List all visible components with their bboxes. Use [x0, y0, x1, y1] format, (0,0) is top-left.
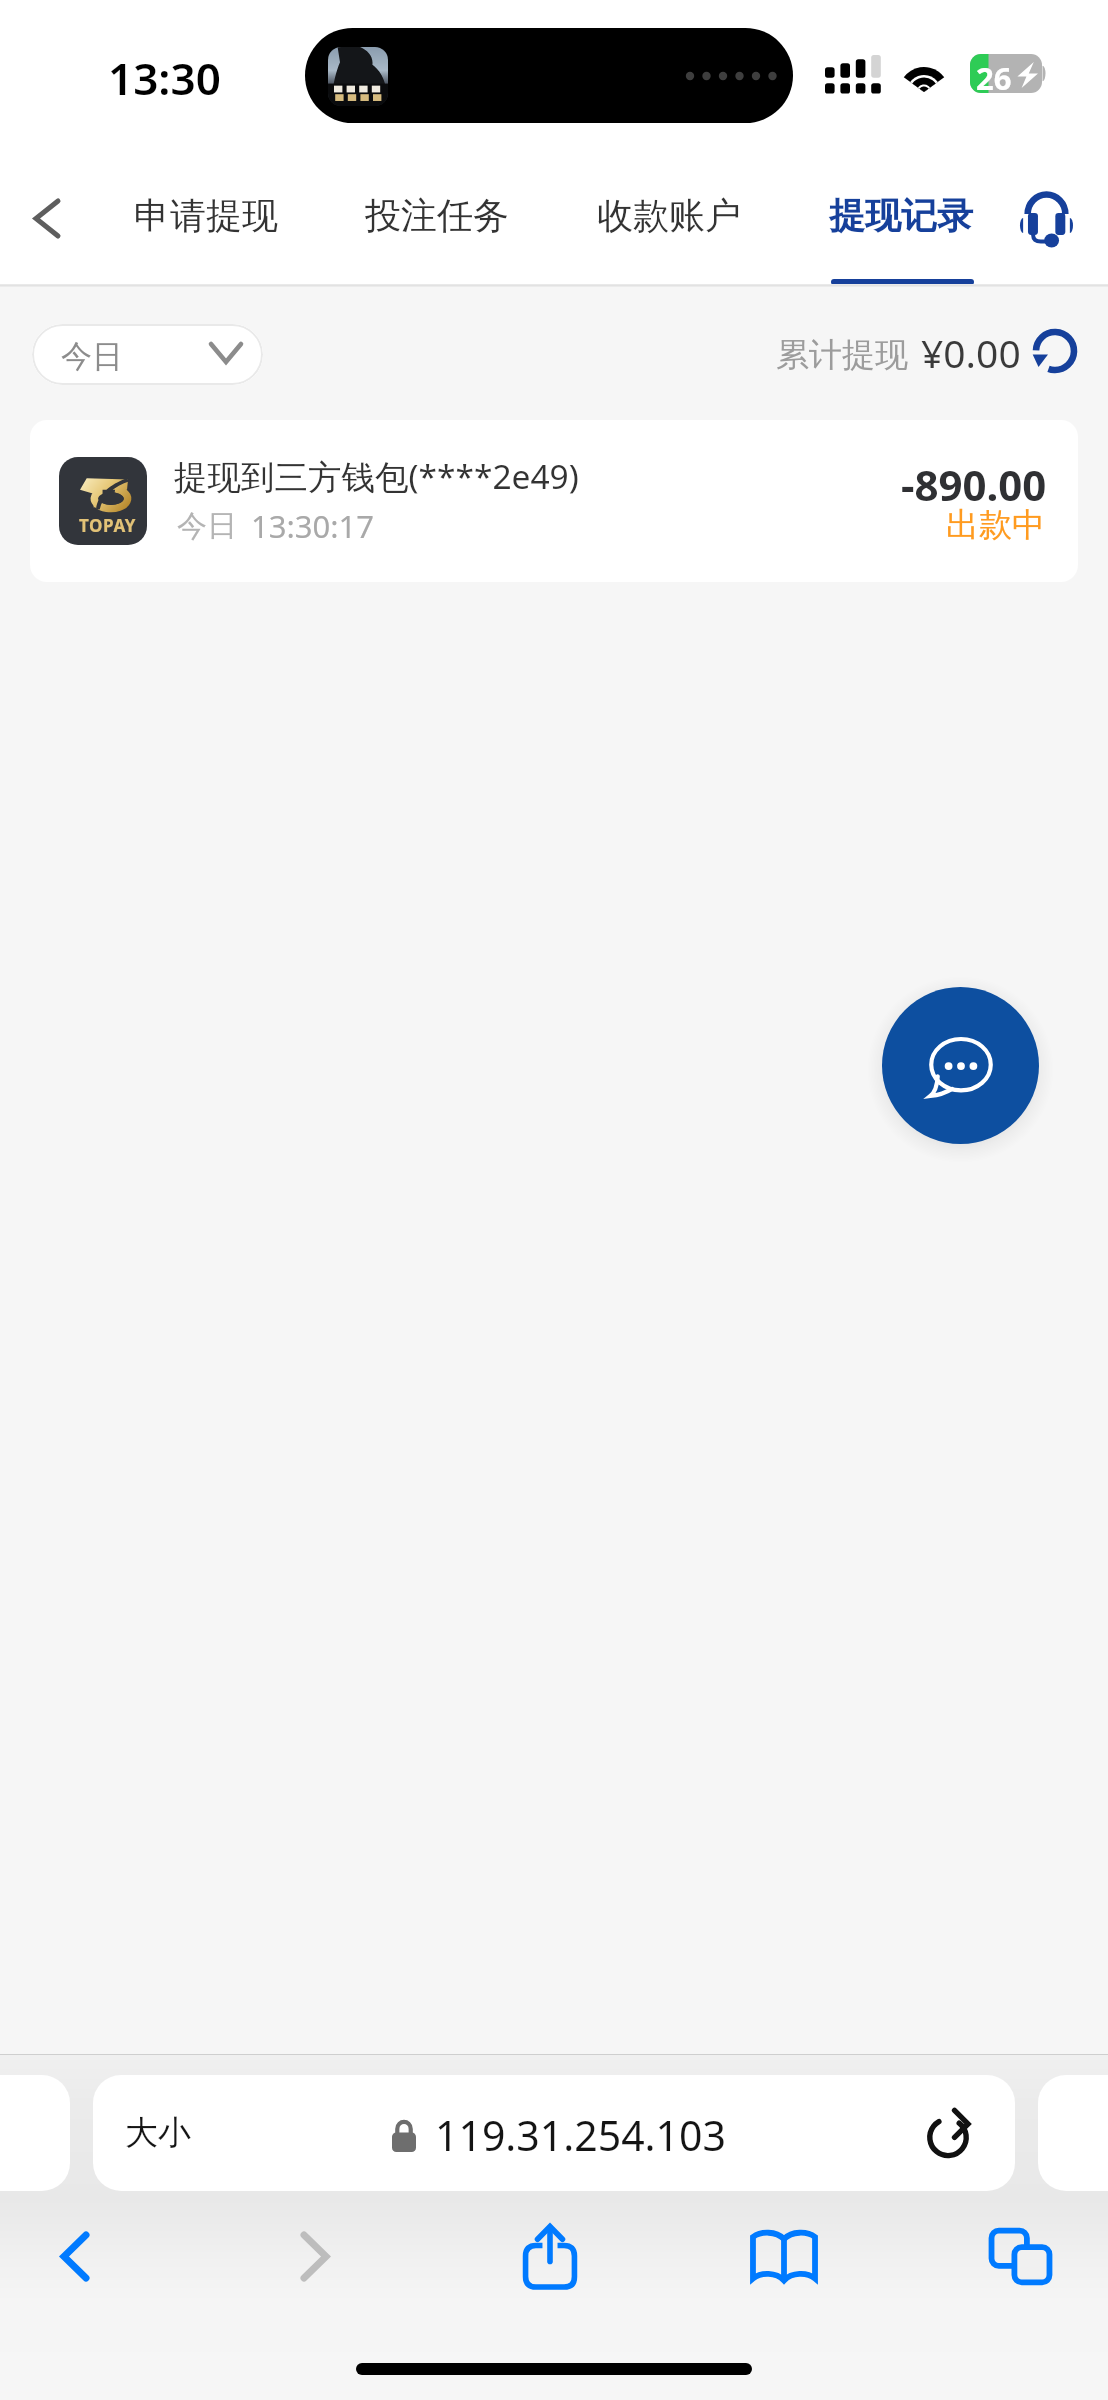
button[interactable]: 提现记录	[791, 148, 1011, 283]
staticText: TOPAY	[79, 514, 137, 537]
staticText: 119.31.254.103	[435, 2107, 726, 2163]
staticText: 今日	[61, 337, 123, 376]
staticText: 26	[976, 57, 1012, 97]
button[interactable]: Customer support chat	[882, 987, 1039, 1144]
button[interactable]: 投注任务	[327, 148, 547, 283]
button[interactable]: Forward	[255, 2196, 375, 2316]
button[interactable]: Reload	[922, 2108, 974, 2160]
staticText: 提现记录	[829, 193, 973, 238]
staticText: ¥0.00	[921, 326, 1021, 379]
staticText: 13:30	[108, 48, 221, 108]
staticText: 申请提现	[134, 193, 278, 238]
staticText: 今日	[177, 507, 237, 545]
button[interactable]: Share	[490, 2196, 610, 2316]
staticText: 提现到三方钱包(****2e49)	[174, 453, 579, 499]
button[interactable]: Back	[15, 2196, 135, 2316]
staticText: 累计提现	[776, 334, 908, 376]
button[interactable]: Refresh	[1032, 328, 1078, 374]
button[interactable]: 今日	[32, 324, 263, 385]
staticText: 收款账户	[597, 193, 741, 238]
staticText: -890.00	[901, 456, 1047, 513]
button[interactable]: Bookmarks	[724, 2196, 844, 2316]
button[interactable]: 大小	[93, 2075, 1015, 2191]
button[interactable]: 收款账户	[559, 148, 779, 283]
button[interactable]: Customer service	[990, 150, 1103, 285]
staticText: 出款中	[946, 504, 1045, 546]
button[interactable]: 申请提现	[96, 148, 316, 283]
button[interactable]: TOPAY	[30, 420, 1078, 582]
button[interactable]: Back	[2, 151, 92, 286]
staticText: 投注任务	[365, 193, 509, 238]
staticText: 13:30:17	[251, 505, 375, 547]
button[interactable]: Tabs	[960, 2196, 1080, 2316]
staticText: 大小	[125, 2112, 191, 2154]
